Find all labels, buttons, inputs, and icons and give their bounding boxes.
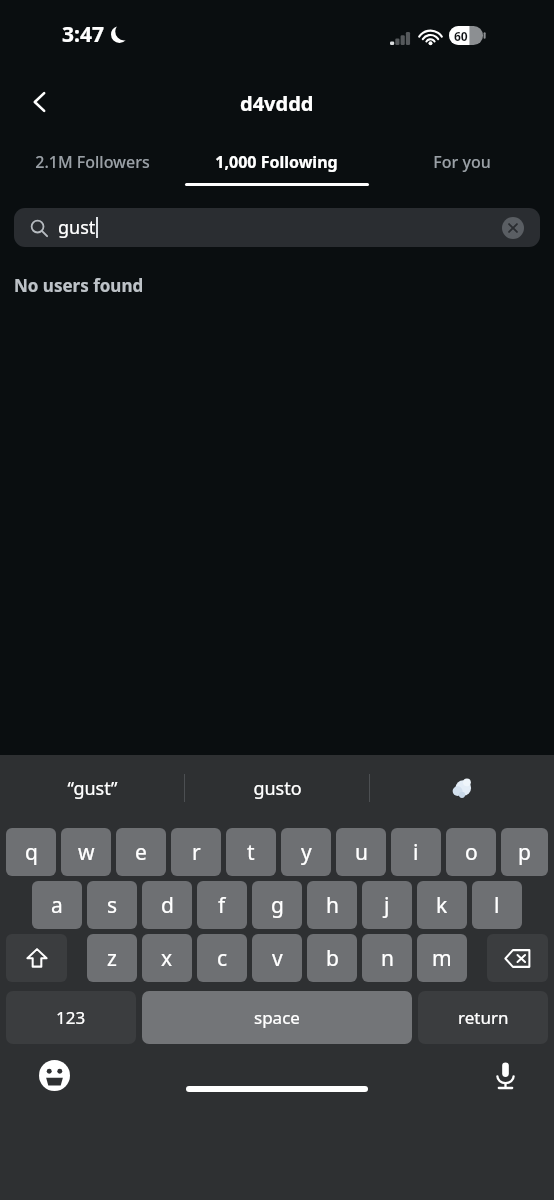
staticText: c [217, 944, 228, 973]
staticText: return [458, 1006, 509, 1029]
staticText: w [78, 838, 95, 867]
staticText: n [381, 944, 394, 973]
button[interactable]: r [171, 828, 221, 876]
button[interactable]: i [391, 828, 441, 876]
button[interactable]: w [61, 828, 111, 876]
button[interactable]: q [6, 828, 56, 876]
staticText: k [436, 891, 448, 920]
button[interactable]: e [116, 828, 166, 876]
button[interactable]: Emoji keyboard [33, 1054, 75, 1096]
button[interactable]: z [87, 934, 137, 982]
staticText: i [413, 838, 419, 867]
staticText: 3:47 [62, 20, 104, 49]
button[interactable]: n [362, 934, 412, 982]
staticText: 60 [454, 28, 468, 44]
staticText: r [192, 838, 201, 867]
button[interactable]: a [32, 881, 82, 929]
staticText: m [432, 944, 452, 973]
staticText: p [518, 838, 531, 867]
staticText: x [161, 944, 173, 973]
staticText: 2.1M Followers [35, 151, 150, 173]
button[interactable]: return [418, 991, 548, 1044]
button[interactable]: k [417, 881, 467, 929]
button[interactable]: For you [369, 140, 554, 190]
button[interactable]: u [336, 828, 386, 876]
staticText: space [254, 1006, 300, 1029]
button[interactable]: 123 [6, 991, 136, 1044]
button[interactable]: f [197, 881, 247, 929]
button[interactable]: gusto [185, 755, 369, 821]
button[interactable]: l [472, 881, 522, 929]
button[interactable]: v [252, 934, 302, 982]
staticText: t [247, 838, 255, 867]
staticText: u [355, 838, 368, 867]
staticText: For you [433, 151, 491, 173]
button[interactable]: Shift [6, 934, 67, 982]
button[interactable]: g [252, 881, 302, 929]
staticText: No users found [14, 274, 144, 297]
staticText: d4vddd [240, 90, 314, 117]
button[interactable]: space [142, 991, 412, 1044]
staticText: v [272, 944, 283, 973]
staticText: e [135, 838, 147, 867]
staticText: f [218, 891, 226, 920]
button[interactable]: p [501, 828, 548, 876]
button[interactable]: Voice input [484, 1054, 526, 1096]
button[interactable]: m [417, 934, 467, 982]
staticText: b [326, 944, 339, 973]
button[interactable]: Emoji suggestion [370, 755, 554, 821]
staticText: g [271, 891, 284, 920]
button[interactable]: gust [14, 208, 540, 247]
staticText: a [51, 891, 63, 920]
button[interactable]: j [362, 881, 412, 929]
staticText: gust [58, 215, 96, 240]
button[interactable]: t [226, 828, 276, 876]
button[interactable]: Clear text [500, 215, 526, 241]
button[interactable]: 1,000 Following [184, 140, 369, 190]
button[interactable]: o [446, 828, 496, 876]
staticText: j [384, 891, 390, 920]
staticText: s [107, 891, 118, 920]
button[interactable]: Back [14, 76, 66, 128]
staticText: o [465, 838, 478, 867]
staticText: d [161, 891, 174, 920]
staticText: q [25, 838, 38, 867]
button[interactable]: x [142, 934, 192, 982]
button[interactable]: b [307, 934, 357, 982]
button[interactable]: d [142, 881, 192, 929]
button[interactable]: Backspace [487, 934, 548, 982]
staticText: h [326, 891, 339, 920]
button[interactable]: s [87, 881, 137, 929]
button[interactable]: h [307, 881, 357, 929]
staticText: 1,000 Following [215, 151, 338, 173]
staticText: z [107, 944, 117, 973]
staticText: y [301, 838, 312, 867]
button[interactable]: y [281, 828, 331, 876]
staticText: l [494, 891, 500, 920]
button[interactable]: c [197, 934, 247, 982]
staticText: 123 [56, 1006, 86, 1029]
staticText: gusto [253, 776, 302, 801]
button[interactable]: “gust” [0, 755, 184, 821]
staticText: “gust” [67, 776, 118, 801]
button[interactable]: 2.1M Followers [0, 140, 184, 190]
